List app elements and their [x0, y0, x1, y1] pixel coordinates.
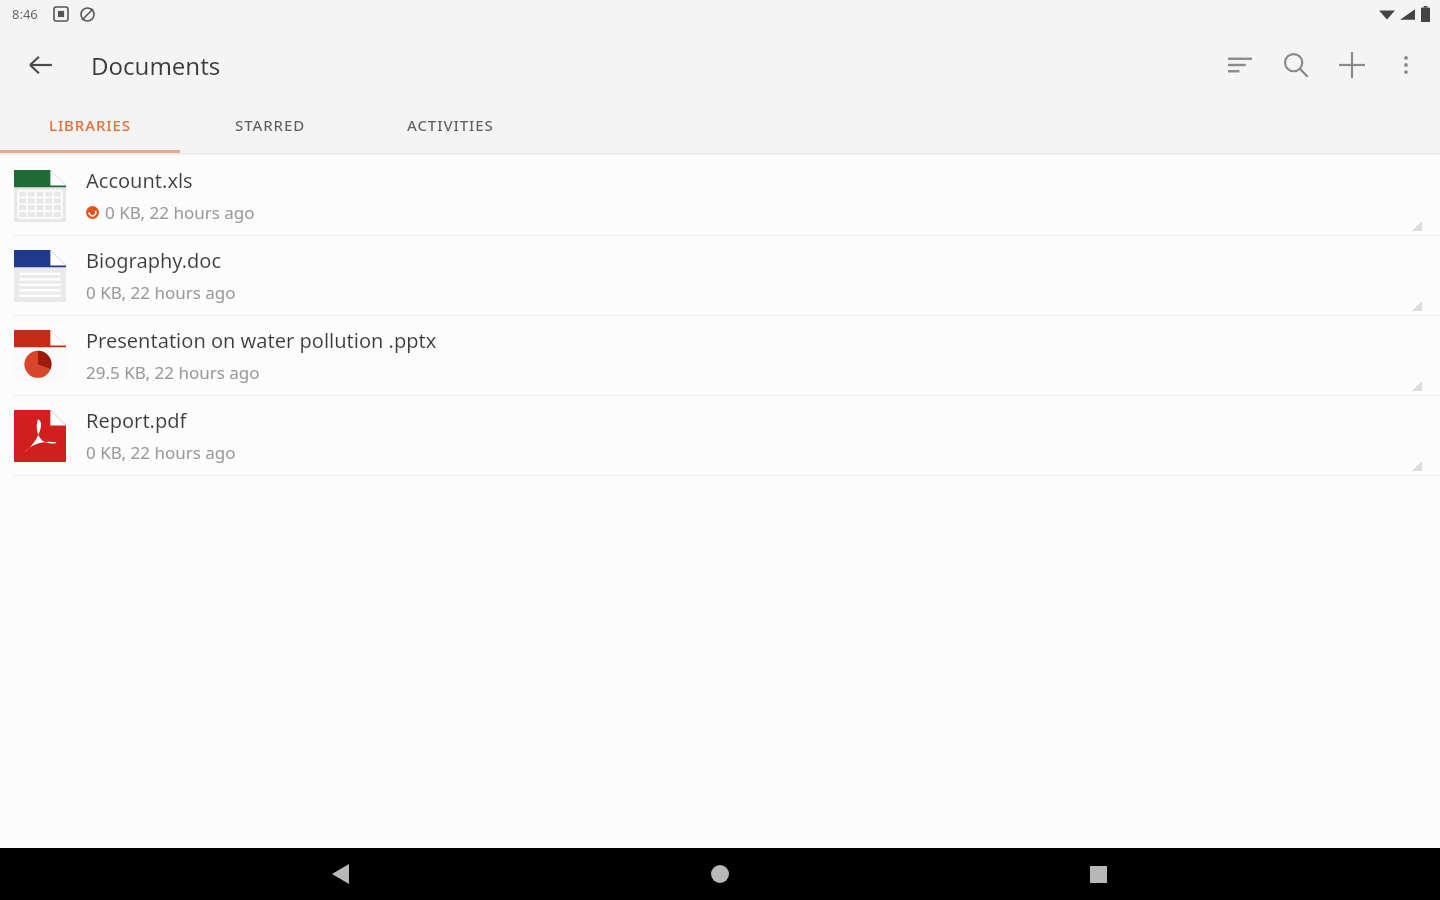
button[interactable]: Home	[684, 848, 756, 900]
button[interactable]: Sort	[1212, 37, 1268, 93]
button[interactable]: Report.pdf	[0, 396, 1440, 476]
staticText: 0 KB, 22 hours ago	[105, 201, 255, 224]
button[interactable]: Back	[306, 848, 378, 900]
button[interactable]: More options	[1380, 39, 1432, 91]
button[interactable]: ACTIVITIES	[360, 102, 540, 153]
button[interactable]: Search	[1268, 37, 1324, 93]
staticText: 0 KB, 22 hours ago	[86, 441, 236, 464]
staticText: Report.pdf	[86, 407, 187, 434]
staticText: Documents	[91, 49, 221, 82]
staticText: ACTIVITIES	[407, 115, 494, 135]
staticText: 29.5 KB, 22 hours ago	[86, 361, 260, 384]
button[interactable]: Biography.doc	[0, 236, 1440, 316]
staticText: Biography.doc	[86, 247, 222, 274]
button[interactable]: LIBRARIES	[0, 102, 180, 153]
button[interactable]: Presentation on water pollution .pptx	[0, 316, 1440, 396]
staticText: 0 KB, 22 hours ago	[86, 281, 236, 304]
staticText: STARRED	[235, 115, 306, 135]
staticText: Account.xls	[86, 167, 193, 194]
button[interactable]: Account.xls	[0, 156, 1440, 236]
staticText: Presentation on water pollution .pptx	[86, 327, 437, 354]
button[interactable]: Recent apps	[1062, 848, 1134, 900]
staticText: 8:46	[12, 5, 38, 23]
button[interactable]: Back	[14, 38, 68, 92]
staticText: LIBRARIES	[49, 115, 131, 135]
button[interactable]: STARRED	[180, 102, 360, 153]
button[interactable]: Add	[1324, 37, 1380, 93]
